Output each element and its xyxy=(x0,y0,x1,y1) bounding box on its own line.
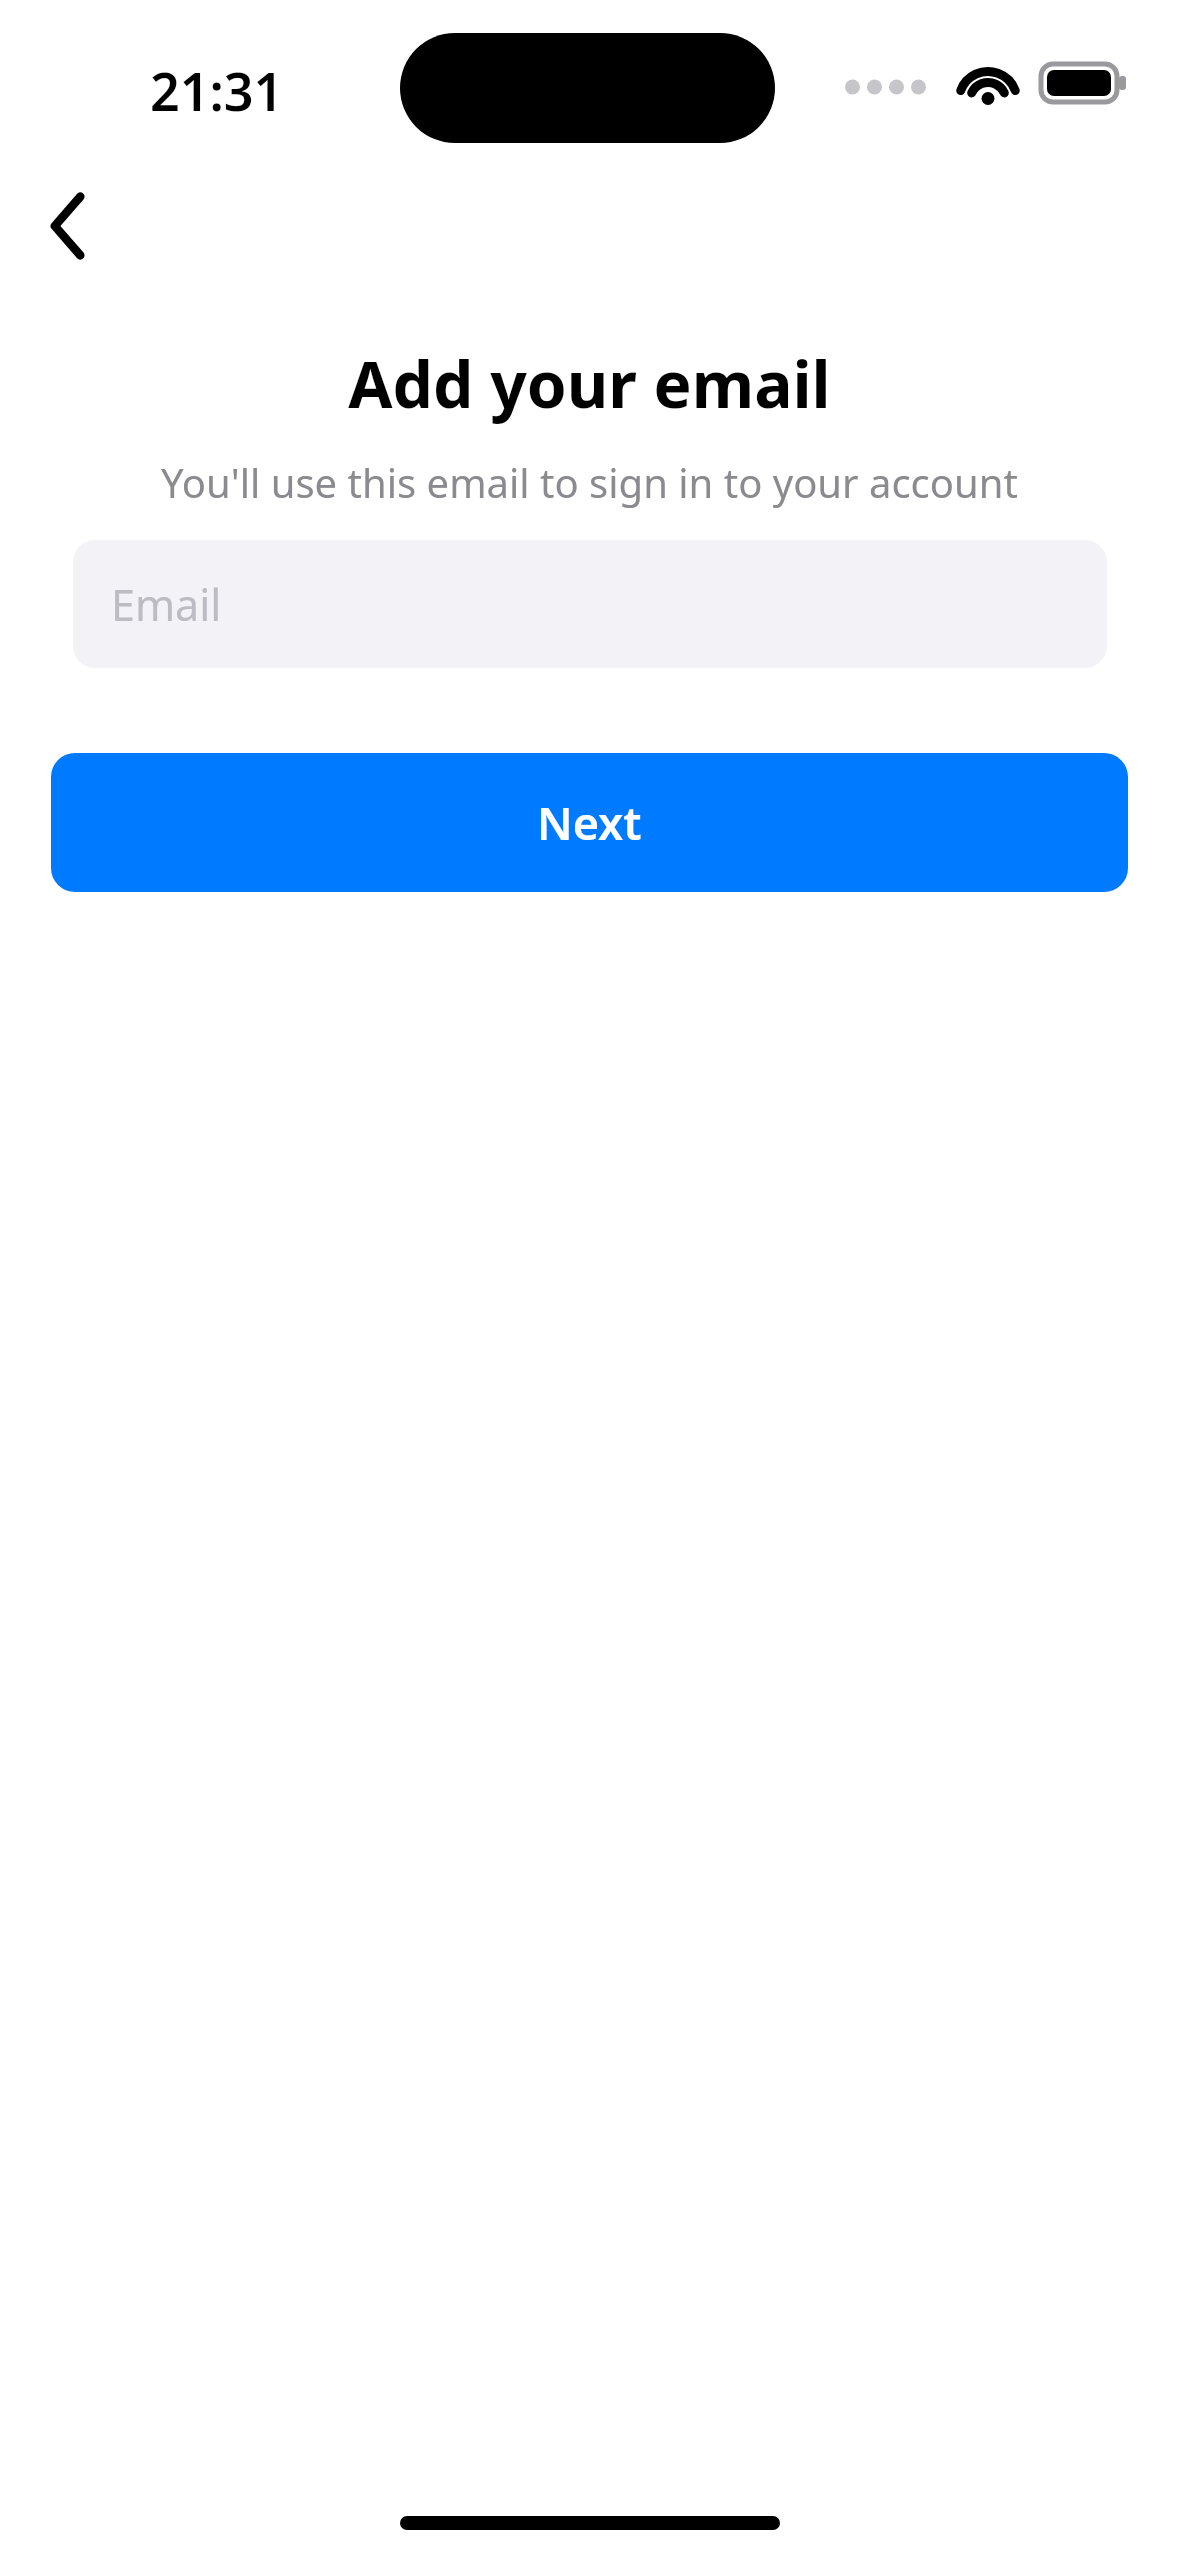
button[interactable]: Email xyxy=(73,540,1107,668)
staticText: You'll use this email to sign in to your… xyxy=(0,455,1179,509)
button[interactable]: Back xyxy=(18,176,118,276)
staticText: Add your email xyxy=(0,340,1179,427)
button[interactable]: Next xyxy=(51,753,1128,892)
staticText: 21:31 xyxy=(150,55,284,126)
staticText: Next xyxy=(537,792,642,853)
staticText: Email xyxy=(111,575,222,634)
